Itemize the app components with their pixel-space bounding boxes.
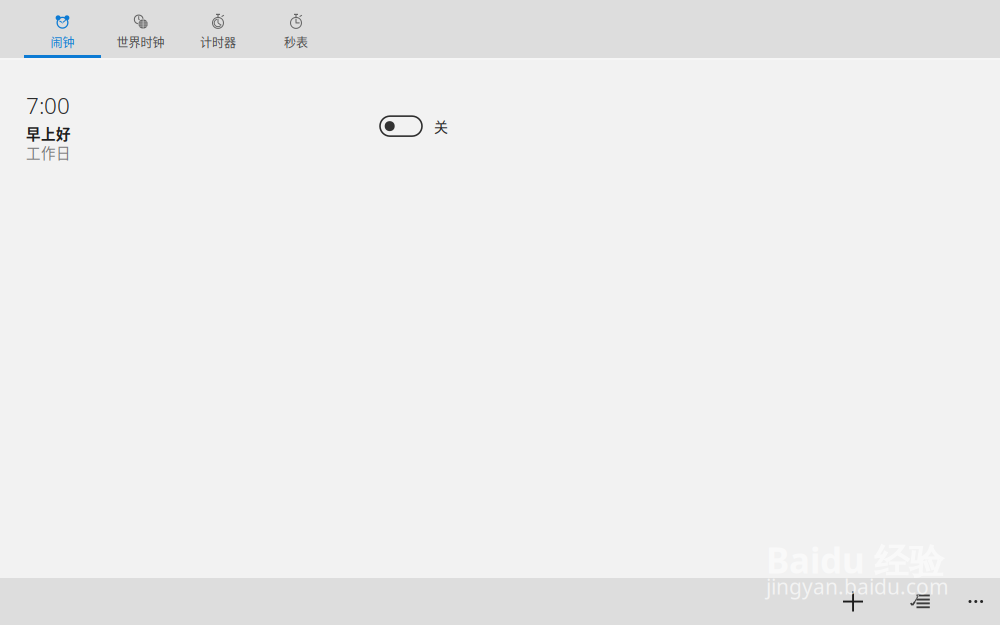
staticText: jingyan.baidu.com [766,572,949,601]
staticText: 工作日 [26,142,71,163]
button[interactable]: 添加闹钟 [830,578,876,625]
staticText: 计时器 [200,33,236,51]
button[interactable]: 世界时钟 [102,0,179,58]
staticText: 早上好 [26,123,71,144]
staticText: 关 [434,116,448,136]
button[interactable]: 选择 [897,578,943,625]
button[interactable]: 闹钟 [23,0,102,58]
button[interactable]: 秒表 [257,0,335,58]
button[interactable]: 计时器 [179,0,257,58]
button[interactable]: 7:00 [0,90,460,170]
staticText: 世界时钟 [116,33,164,51]
staticText: 7:00 [26,90,70,121]
staticText: Baidu 经验 [766,536,944,584]
staticText: 闹钟 [50,33,74,51]
staticText: 秒表 [284,33,308,51]
button[interactable]: 更多 [953,578,999,625]
